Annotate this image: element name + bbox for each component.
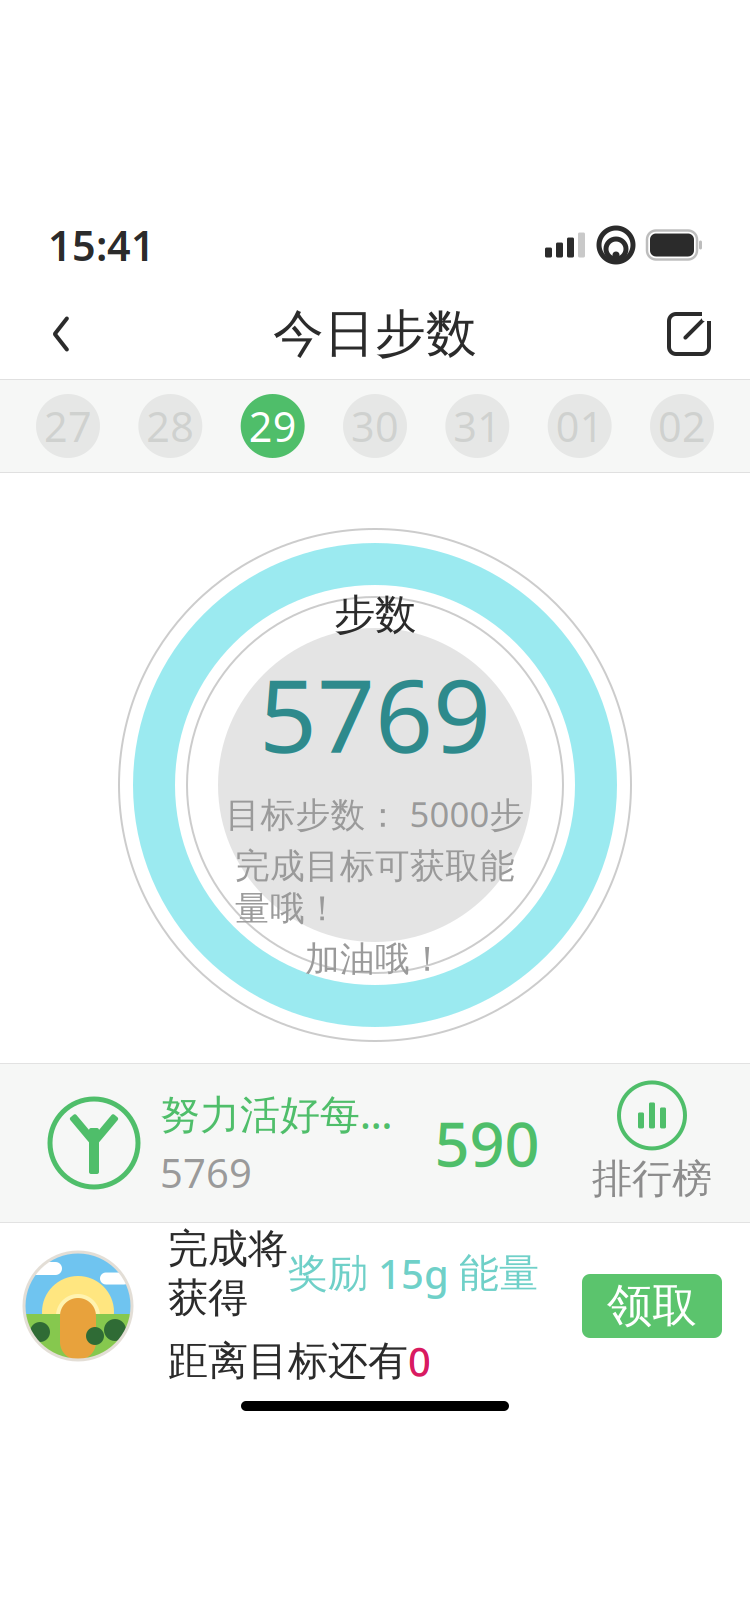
button[interactable]: 28 bbox=[138, 394, 202, 458]
staticText: 28 bbox=[146, 399, 194, 453]
staticText: 01 bbox=[556, 399, 604, 453]
staticText: 排行榜 bbox=[592, 1154, 712, 1203]
staticText: 590 bbox=[434, 1102, 539, 1184]
staticText: 15:41 bbox=[48, 218, 155, 272]
staticText: 领取 bbox=[607, 1278, 697, 1334]
button[interactable]: 30 bbox=[343, 394, 407, 458]
staticText: 0 bbox=[408, 1335, 431, 1388]
staticText: 02 bbox=[658, 399, 706, 453]
staticText: 步数 bbox=[334, 589, 416, 640]
button[interactable]: 27 bbox=[36, 394, 100, 458]
staticText: 距离目标还有 bbox=[168, 1337, 408, 1386]
button[interactable]: Share bbox=[654, 299, 724, 369]
staticText: 目标步数： 5000步 bbox=[225, 791, 524, 837]
staticText: 奖励 bbox=[288, 1249, 368, 1298]
button[interactable]: 排行榜 bbox=[582, 1082, 722, 1203]
staticText: 完成将获得 bbox=[168, 1224, 288, 1323]
button[interactable]: 01 bbox=[548, 394, 612, 458]
staticText: 5769 bbox=[259, 646, 491, 781]
staticText: 5769 bbox=[160, 1146, 252, 1199]
staticText: 加油哦！ bbox=[305, 938, 445, 981]
button[interactable]: 努力活好每… bbox=[48, 1087, 392, 1199]
button[interactable]: Back bbox=[26, 299, 96, 369]
staticText: 31 bbox=[453, 399, 501, 453]
staticText: 能量 bbox=[459, 1249, 539, 1298]
staticText: 完成目标可获取能量哦！ bbox=[235, 845, 515, 930]
staticText: 27 bbox=[44, 399, 92, 453]
button[interactable]: 领取 bbox=[582, 1274, 722, 1338]
staticText: 努力活好每… bbox=[160, 1087, 392, 1140]
button[interactable]: 02 bbox=[650, 394, 714, 458]
button[interactable]: 31 bbox=[445, 394, 509, 458]
button[interactable]: 29 bbox=[241, 394, 305, 458]
staticText: 30 bbox=[351, 399, 399, 453]
staticText: 29 bbox=[249, 399, 297, 453]
staticText: 今日步数 bbox=[273, 303, 477, 365]
staticText: 15g bbox=[368, 1247, 459, 1300]
